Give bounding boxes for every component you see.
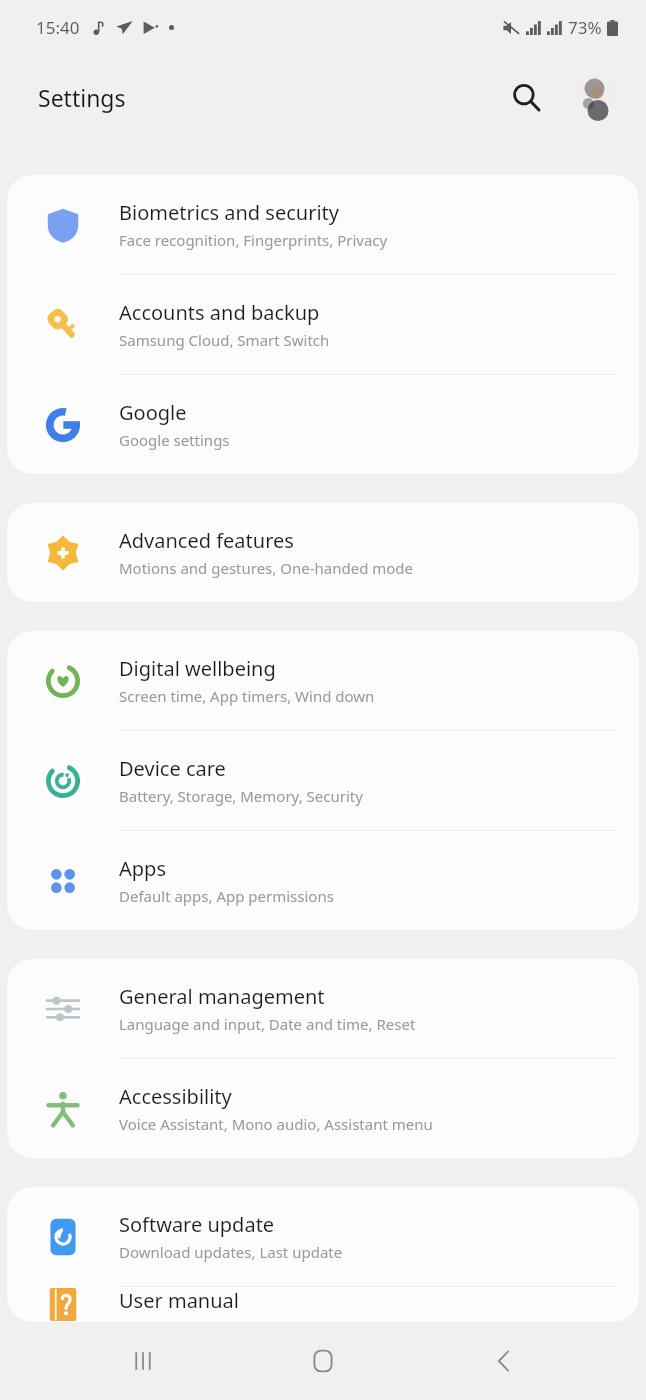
staticText: 15:40 <box>36 16 80 39</box>
staticText: Digital wellbeing <box>119 655 276 682</box>
staticText: Settings <box>38 82 126 113</box>
button[interactable]: General management <box>7 959 639 1058</box>
staticText: Default apps, App permissions <box>119 886 334 906</box>
button[interactable]: Account <box>570 71 622 123</box>
staticText: Apps <box>119 855 166 882</box>
staticText: Language and input, Date and time, Reset <box>119 1014 416 1034</box>
button[interactable]: Software update <box>7 1187 639 1286</box>
button[interactable]: Recent apps <box>105 1323 181 1399</box>
staticText: Samsung Cloud, Smart Switch <box>119 330 330 350</box>
button[interactable]: Home <box>285 1323 361 1399</box>
staticText: Download updates, Last update <box>119 1242 343 1262</box>
button[interactable]: Digital wellbeing <box>7 631 639 730</box>
staticText: Motions and gestures, One-handed mode <box>119 558 414 578</box>
staticText: Battery, Storage, Memory, Security <box>119 786 363 806</box>
staticText: Face recognition, Fingerprints, Privacy <box>119 230 388 250</box>
button[interactable]: Search <box>498 69 554 125</box>
staticText: General management <box>119 983 325 1010</box>
button[interactable]: User manual <box>7 1287 639 1322</box>
staticText: Software update <box>119 1211 275 1238</box>
staticText: Screen time, App timers, Wind down <box>119 686 375 706</box>
staticText: Google settings <box>119 430 230 450</box>
button[interactable]: Accounts and backup <box>7 275 639 374</box>
staticText: Advanced features <box>119 527 294 554</box>
staticText: Accessibility <box>119 1083 232 1110</box>
button[interactable]: Device care <box>7 731 639 830</box>
button[interactable]: Accessibility <box>7 1059 639 1158</box>
button[interactable]: Apps <box>7 831 639 930</box>
staticText: 73% <box>568 16 602 39</box>
staticText: Voice Assistant, Mono audio, Assistant m… <box>119 1114 433 1134</box>
button[interactable]: Biometrics and security <box>7 175 639 274</box>
button[interactable]: Advanced features <box>7 503 639 602</box>
staticText: Accounts and backup <box>119 299 320 326</box>
staticText: Biometrics and security <box>119 199 339 226</box>
staticText: Google <box>119 399 187 426</box>
staticText: User manual <box>119 1287 239 1314</box>
staticText: Device care <box>119 755 226 782</box>
button[interactable]: Back <box>466 1323 542 1399</box>
button[interactable]: Google <box>7 375 639 474</box>
